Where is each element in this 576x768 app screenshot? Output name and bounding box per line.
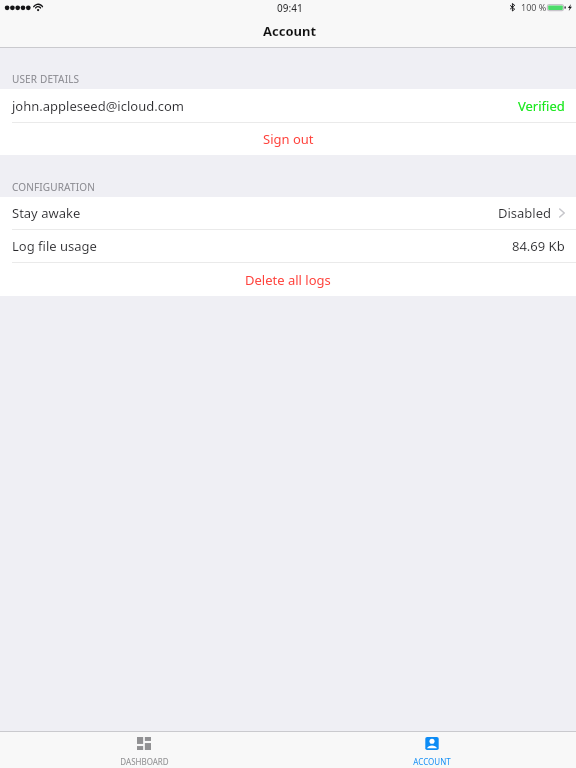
staticText: 100 % (521, 1, 547, 13)
button[interactable]: Delete all logs (0, 263, 576, 296)
staticText: 84.69 Kb (512, 237, 565, 255)
button[interactable]: Log file usage (0, 230, 576, 262)
staticText: Stay awake (12, 204, 81, 222)
staticText: john.appleseed@icloud.com (12, 97, 184, 115)
staticText: 09:41 (277, 1, 303, 15)
staticText: ACCOUNT (413, 756, 451, 767)
button[interactable]: DASHBOARD (0, 732, 288, 768)
staticText: Log file usage (12, 237, 97, 255)
staticText: Delete all logs (245, 271, 331, 289)
staticText: Sign out (263, 130, 314, 148)
button[interactable]: Stay awake (0, 197, 576, 229)
staticText: CONFIGURATION (12, 180, 95, 194)
button[interactable]: Sign out (0, 123, 576, 155)
staticText: DASHBOARD (120, 756, 169, 767)
staticText: Account (263, 22, 317, 40)
button[interactable]: john.appleseed@icloud.com (0, 89, 576, 122)
staticText: Verified (518, 97, 565, 115)
button[interactable]: ACCOUNT (288, 732, 576, 768)
staticText: USER DETAILS (12, 72, 80, 86)
staticText: Disabled (498, 204, 552, 222)
